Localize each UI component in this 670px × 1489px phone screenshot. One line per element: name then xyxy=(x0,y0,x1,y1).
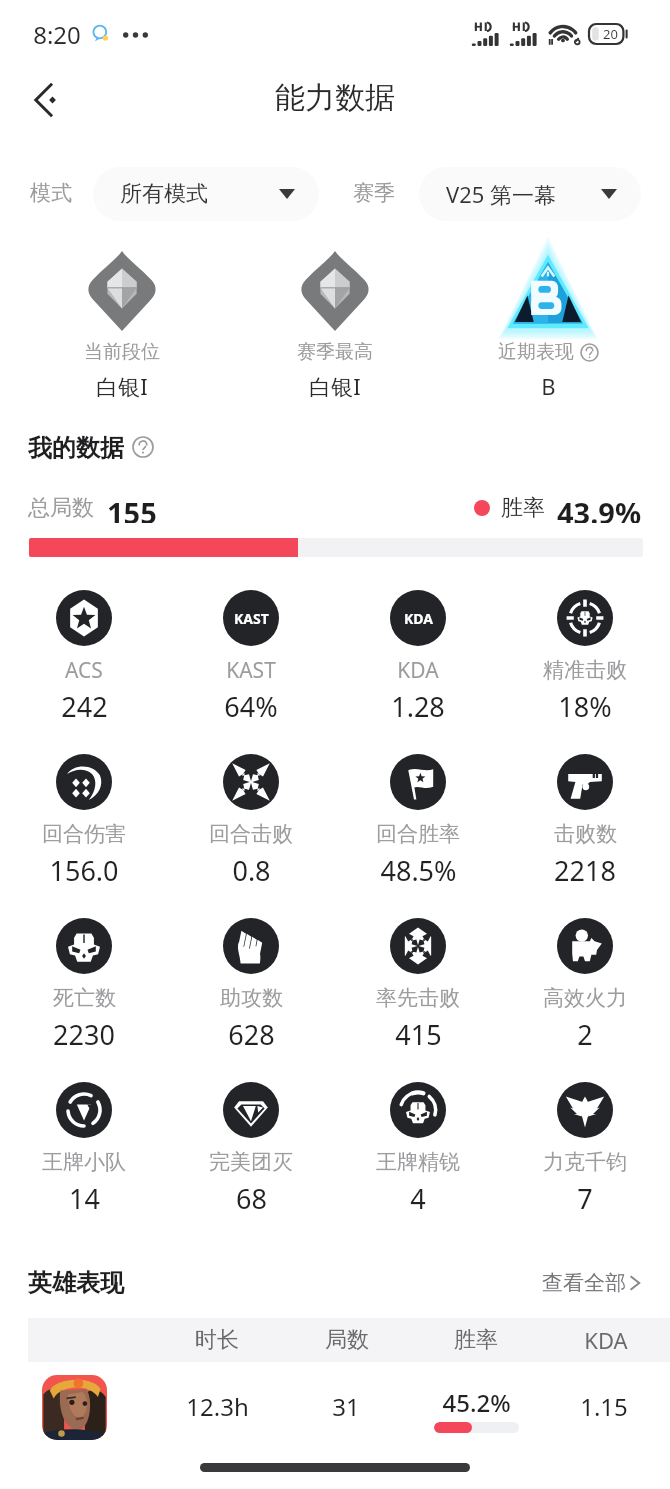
button[interactable]: 击败数 xyxy=(557,754,613,810)
button[interactable]: 回合击败 xyxy=(223,754,279,810)
staticText: 力克千钧 xyxy=(543,1149,627,1175)
staticText: 当前段位 xyxy=(84,340,160,364)
staticText: 所有模式 xyxy=(120,180,208,208)
staticText: 击败数 xyxy=(554,821,617,847)
staticText: 完美团灭 xyxy=(209,1149,293,1175)
button[interactable]: 近期表现 xyxy=(506,253,590,331)
staticText: KDA xyxy=(397,656,439,685)
staticText: 4 xyxy=(410,1180,426,1217)
staticText: 局数 xyxy=(325,1326,369,1354)
staticText: 8:20 xyxy=(33,18,81,51)
staticText: 回合伤害 xyxy=(42,821,126,847)
staticText: 白银I xyxy=(96,371,148,401)
button[interactable]: Back xyxy=(10,66,84,134)
button[interactable]: 高效火力 xyxy=(557,918,613,974)
staticText: ACS xyxy=(65,656,103,685)
staticText: 1.28 xyxy=(391,688,445,725)
staticText: 1.15 xyxy=(580,1390,628,1423)
staticText: 模式 xyxy=(30,180,72,206)
button[interactable]: 率先击败 xyxy=(390,918,446,974)
staticText: 20 xyxy=(603,25,618,43)
staticText: KAST xyxy=(226,656,276,685)
staticText: 31 xyxy=(332,1390,360,1423)
staticText: 胜率 xyxy=(454,1326,498,1354)
staticText: 14 xyxy=(69,1180,100,1217)
staticText: 我的数据 xyxy=(28,433,124,461)
staticText: KDA xyxy=(584,1325,628,1355)
staticText: 415 xyxy=(395,1016,442,1053)
button[interactable]: 赛季最高 xyxy=(301,251,369,331)
staticText: 0.8 xyxy=(232,852,271,889)
button[interactable]: 力克千钧 xyxy=(557,1082,613,1138)
button[interactable]: 精准击败 xyxy=(557,590,613,646)
staticText: 赛季最高 xyxy=(297,340,373,364)
staticText: 2218 xyxy=(554,852,616,889)
button[interactable]: 助攻数 xyxy=(223,918,279,974)
staticText: 242 xyxy=(61,688,108,725)
staticText: 回合胜率 xyxy=(376,821,460,847)
staticText: KAST xyxy=(234,609,269,628)
staticText: 英雄表现 xyxy=(28,1268,124,1298)
staticText: 总局数 xyxy=(28,494,94,522)
button[interactable]: 回合胜率 xyxy=(390,754,446,810)
staticText: 胜率 xyxy=(501,494,545,522)
staticText: 精准击败 xyxy=(543,657,627,683)
button[interactable]: 查看全部 xyxy=(542,1268,644,1298)
staticText: 赛季 xyxy=(353,180,395,206)
staticText: 能力数据 xyxy=(275,79,395,117)
staticText: 68 xyxy=(236,1180,267,1217)
button[interactable]: V25 第一幕 xyxy=(419,167,641,221)
staticText: 48.5% xyxy=(380,852,457,889)
button[interactable]: 王牌小队 xyxy=(56,1082,112,1138)
staticText: 王牌精锐 xyxy=(376,1149,460,1175)
staticText: 155 xyxy=(107,493,157,523)
staticText: 43.9% xyxy=(557,493,642,523)
button[interactable] xyxy=(0,1365,670,1450)
staticText: 助攻数 xyxy=(220,985,283,1011)
button[interactable]: KAST xyxy=(223,590,279,646)
staticText: V25 第一幕 xyxy=(446,179,557,209)
staticText: 近期表现 xyxy=(498,340,574,364)
staticText: 156.0 xyxy=(49,852,119,889)
staticText: 查看全部 xyxy=(542,1270,626,1296)
staticText: KDA xyxy=(404,609,433,628)
staticText: 64% xyxy=(224,688,278,725)
staticText: 死亡数 xyxy=(53,985,116,1011)
staticText: 率先击败 xyxy=(376,985,460,1011)
staticText: 7 xyxy=(577,1180,593,1217)
staticText: 2 xyxy=(577,1016,593,1053)
staticText: B xyxy=(541,371,556,401)
staticText: 高效火力 xyxy=(543,985,627,1011)
button[interactable]: 完美团灭 xyxy=(223,1082,279,1138)
button[interactable]: 死亡数 xyxy=(56,918,112,974)
staticText: 12.3h xyxy=(186,1390,249,1423)
staticText: 2230 xyxy=(53,1016,115,1053)
button[interactable]: 王牌精锐 xyxy=(390,1082,446,1138)
button[interactable]: KDA xyxy=(390,590,446,646)
button[interactable]: 所有模式 xyxy=(93,167,319,221)
staticText: 18% xyxy=(558,688,612,725)
staticText: 回合击败 xyxy=(209,821,293,847)
staticText: 白银I xyxy=(309,371,361,401)
staticText: 628 xyxy=(228,1016,275,1053)
staticText: 时长 xyxy=(195,1326,239,1354)
button[interactable]: 回合伤害 xyxy=(56,754,112,810)
staticText: 王牌小队 xyxy=(42,1149,126,1175)
button[interactable]: ACS xyxy=(56,590,112,646)
button[interactable]: 当前段位 xyxy=(88,251,156,331)
staticText: 45.2% xyxy=(442,1386,511,1419)
